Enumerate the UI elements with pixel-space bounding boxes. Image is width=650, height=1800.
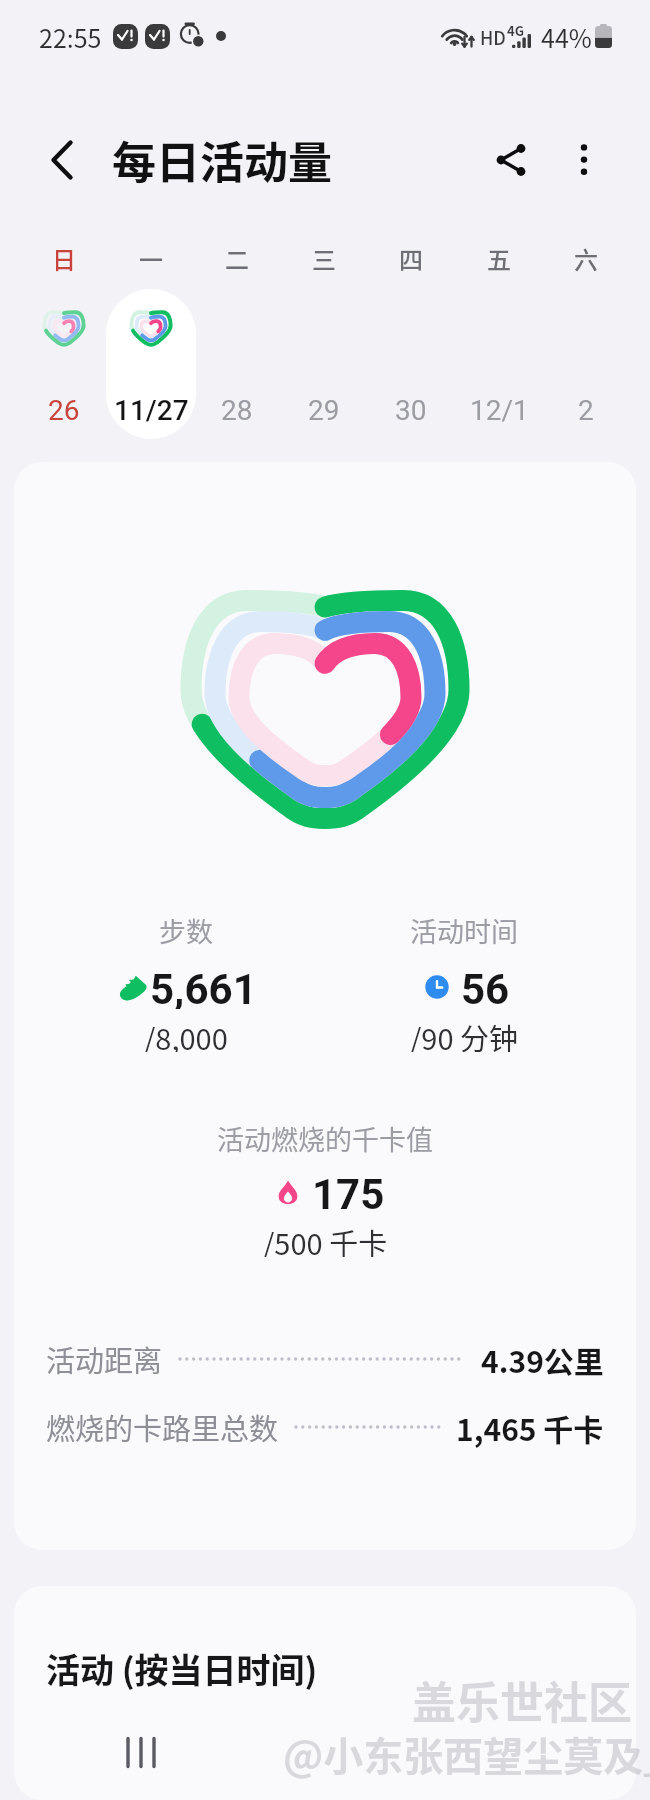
staticText: 5,661	[150, 965, 257, 1009]
button[interactable]	[194, 232, 280, 440]
staticText: 每日活动量	[112, 128, 332, 192]
button[interactable]	[21, 232, 107, 440]
staticText: 活动 (按当日时间)	[46, 1644, 318, 1693]
staticText: HD	[480, 24, 506, 50]
staticText: 29	[308, 394, 340, 427]
staticText: 盖乐世社区	[412, 1668, 632, 1732]
staticText: /500 千卡	[263, 1221, 388, 1257]
staticText: /90 分钟	[410, 1016, 519, 1052]
button[interactable]: 燃烧的卡路里总数	[46, 1403, 604, 1451]
button[interactable]	[456, 232, 542, 440]
staticText: 活动距离	[46, 1338, 163, 1380]
staticText: 二	[225, 241, 249, 276]
button[interactable]: Share	[485, 134, 537, 186]
staticText: 五	[487, 241, 511, 276]
button[interactable]	[281, 232, 367, 440]
staticText: 四	[399, 241, 423, 276]
button[interactable]: 活动距离	[46, 1335, 604, 1383]
button[interactable]	[368, 232, 454, 440]
button[interactable]: Recents	[106, 1722, 166, 1782]
staticText: 六	[574, 241, 598, 276]
staticText: 日	[52, 241, 76, 276]
staticText: 22:55	[39, 19, 102, 55]
staticText: 28	[221, 394, 253, 427]
staticText: 44%	[541, 19, 592, 55]
button[interactable]: Back	[36, 134, 88, 186]
staticText: 活动时间	[410, 911, 518, 947]
staticText: 4G	[507, 21, 524, 40]
staticText: 1,465 千卡	[456, 1406, 604, 1449]
staticText: 175	[312, 1170, 385, 1214]
staticText: 2	[578, 394, 594, 427]
button[interactable]	[543, 232, 629, 440]
staticText: 活动燃烧的千卡值	[217, 1119, 433, 1155]
staticText: 26	[48, 394, 80, 427]
button[interactable]	[108, 232, 194, 440]
staticText: 4.39公里	[481, 1338, 604, 1381]
staticText: /8,000	[144, 1016, 228, 1052]
staticText: 步数	[159, 911, 213, 947]
staticText: 燃烧的卡路里总数	[46, 1406, 279, 1448]
button[interactable]: More options	[558, 134, 610, 186]
staticText: 12/1	[470, 394, 529, 427]
staticText: 11/27	[114, 394, 189, 427]
staticText: 56	[461, 965, 510, 1009]
staticText: 三	[312, 241, 336, 276]
staticText: 一	[139, 241, 163, 276]
staticText: 30	[395, 394, 427, 427]
staticText: @小东张西望尘莫及_	[283, 1725, 650, 1783]
